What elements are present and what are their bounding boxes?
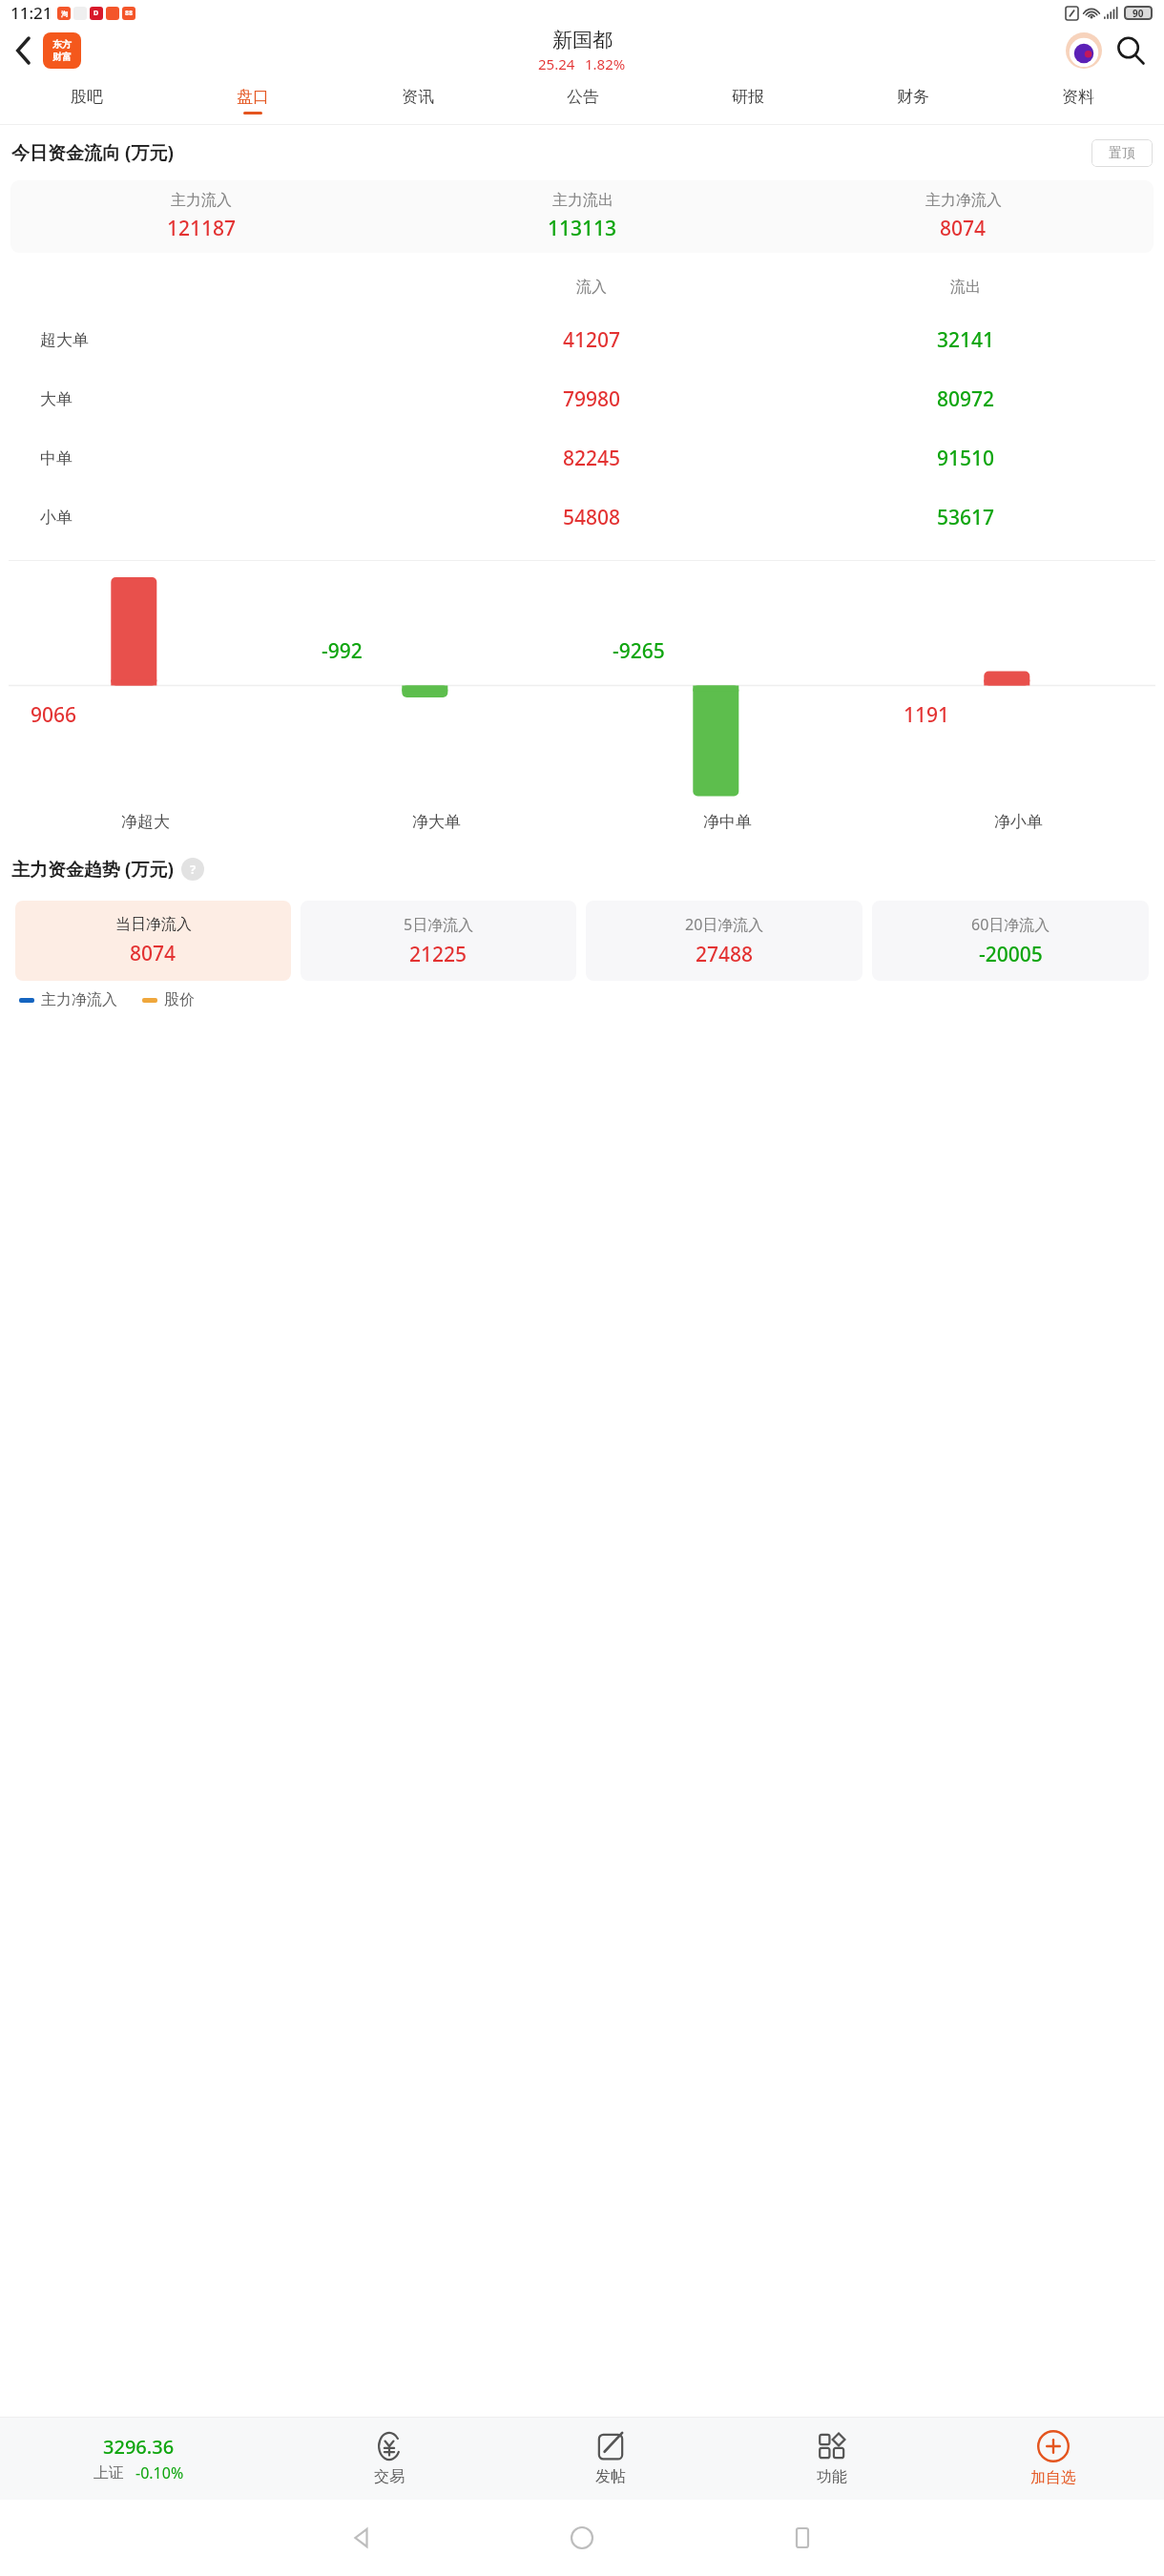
staticText: 主力资金趋势 (万元) [11,857,174,882]
staticText: 53617 [779,504,1153,531]
button[interactable]: 20日净流入 [586,901,863,981]
staticText: 3296.36 [103,2434,175,2460]
staticText: 净大单 [412,812,461,832]
staticText: 净中单 [703,812,752,832]
staticText: 主力净流入 [41,990,117,1009]
staticText: 32141 [779,326,1153,354]
button[interactable]: 置顶 [1091,139,1153,167]
staticText: 淘 [61,10,68,18]
button[interactable]: 财务 [830,76,995,124]
staticText: 股价 [164,990,195,1009]
staticText: -992 [322,637,363,665]
button[interactable]: 盘口 [170,76,335,124]
button[interactable]: 东方 [43,32,81,69]
staticText: 新国都 [552,28,613,52]
button[interactable]: AI assistant [1063,30,1105,72]
staticText: 79980 [405,385,779,413]
button[interactable]: Home [555,2511,609,2565]
button[interactable]: 股吧 [4,76,170,124]
button[interactable]: 研报 [665,76,830,124]
staticText: 盘口 [237,87,269,107]
button[interactable]: Help [181,858,204,881]
staticText: 41207 [405,326,779,354]
button[interactable]: 3296.36 [0,2418,278,2500]
button[interactable]: 加自选 [943,2418,1164,2500]
button[interactable]: Recents [776,2511,829,2565]
staticText: 东方 [52,38,72,51]
staticText: 主力流入 [171,191,232,210]
staticText: 25.24 [538,54,575,73]
staticText: 主力流出 [552,191,613,210]
staticText: 20日净流入 [685,914,764,935]
button[interactable]: 公告 [500,76,665,124]
staticText: ? [190,861,197,878]
staticText: 82245 [405,445,779,472]
staticText: -0.10% [135,2462,184,2483]
staticText: 交易 [374,2467,405,2486]
staticText: 资讯 [402,87,434,107]
staticText: 加自选 [1030,2468,1076,2487]
button[interactable]: 大单 [11,369,1153,428]
button[interactable]: 60日净流入 [872,901,1149,981]
button[interactable]: Back [335,2511,388,2565]
staticText: 90 [1133,7,1144,20]
staticText: 流入 [405,278,779,297]
staticText: 当日净流入 [115,915,192,934]
staticText: 小单 [40,508,405,528]
staticText: 8074 [130,940,177,967]
staticText: D [94,9,99,18]
button[interactable]: 资讯 [335,76,500,124]
button[interactable]: Search [1109,29,1153,73]
button[interactable]: 资料 [995,76,1160,124]
button[interactable]: 中单 [11,428,1153,488]
staticText: 1.82% [585,54,626,73]
staticText: 上证 [94,2463,124,2483]
staticText: 净超大 [121,812,170,832]
staticText: 大单 [40,389,405,409]
staticText: 27488 [696,941,754,968]
staticText: -9265 [613,637,665,665]
button[interactable]: 小单 [11,488,1153,547]
button[interactable]: 功能 [721,2418,943,2500]
staticText: 11:21 [10,2,52,24]
staticText: 超大单 [40,330,405,350]
button[interactable]: 发帖 [500,2418,721,2500]
staticText: 54808 [405,504,779,531]
staticText: 置顶 [1109,145,1135,162]
staticText: 21225 [409,941,468,968]
staticText: 公告 [567,87,599,107]
button[interactable]: 交易 [278,2418,500,2500]
staticText: 功能 [817,2467,847,2486]
button[interactable]: Back [5,31,43,70]
staticText: 股吧 [71,87,103,107]
staticText: 主力净流入 [925,191,1002,210]
staticText: 研报 [732,87,764,107]
staticText: 中单 [40,448,405,468]
staticText: 发帖 [595,2467,626,2486]
staticText: 88 [125,9,134,18]
staticText: 1191 [904,701,950,729]
staticText: 121187 [167,215,237,242]
staticText: 91510 [779,445,1153,472]
button[interactable]: 超大单 [11,310,1153,369]
staticText: 5日净流入 [404,914,474,935]
staticText: 财富 [52,51,72,63]
staticText: -20005 [979,941,1043,968]
staticText: 流出 [779,278,1153,297]
staticText: 80972 [779,385,1153,413]
staticText: 113113 [548,215,617,242]
staticText: 9066 [31,701,77,729]
staticText: 60日净流入 [971,914,1050,935]
staticText: 8074 [940,215,987,242]
staticText: 净小单 [994,812,1043,832]
staticText: 资料 [1062,87,1094,107]
staticText: 财务 [897,87,929,107]
button[interactable]: 5日净流入 [301,901,576,981]
staticText: 今日资金流向 (万元) [11,140,174,165]
button[interactable]: 当日净流入 [15,901,291,981]
